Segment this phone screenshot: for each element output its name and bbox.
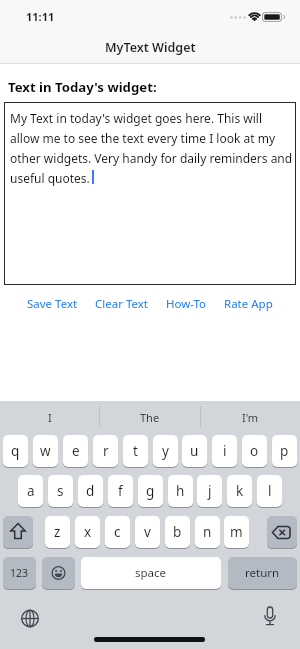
- staticText: k: [236, 482, 244, 500]
- staticText: c: [114, 523, 121, 541]
- staticText: Save Text: [27, 296, 78, 312]
- button[interactable]: a: [18, 475, 43, 507]
- staticText: a: [27, 482, 35, 500]
- button[interactable]: y: [153, 435, 178, 467]
- button[interactable]: b: [165, 516, 190, 548]
- button[interactable]: The: [110, 406, 190, 428]
- button[interactable]: j: [197, 475, 222, 507]
- staticText: q: [11, 442, 20, 460]
- button[interactable]: d: [78, 475, 103, 507]
- staticText: p: [280, 442, 289, 460]
- staticText: MyText Widget: [105, 39, 196, 56]
- button[interactable]: m: [224, 516, 249, 548]
- button[interactable]: n: [195, 516, 220, 548]
- button[interactable]: [256, 603, 284, 631]
- button[interactable]: Rate App: [224, 296, 273, 312]
- button[interactable]: c: [105, 516, 130, 548]
- button[interactable]: [267, 516, 297, 548]
- staticText: e: [72, 442, 80, 460]
- staticText: space: [135, 565, 167, 581]
- staticText: j: [208, 482, 212, 500]
- button[interactable]: q: [3, 435, 28, 467]
- staticText: The: [140, 410, 160, 425]
- staticText: return: [245, 565, 280, 581]
- button[interactable]: Clear Text: [95, 296, 148, 312]
- staticText: b: [173, 523, 182, 541]
- button[interactable]: space: [81, 557, 221, 589]
- button[interactable]: e: [63, 435, 88, 467]
- staticText: m: [230, 523, 243, 541]
- button[interactable]: w: [33, 435, 58, 467]
- staticText: n: [203, 523, 212, 541]
- button[interactable]: v: [135, 516, 160, 548]
- button[interactable]: r: [93, 435, 118, 467]
- button[interactable]: Save Text: [27, 296, 78, 312]
- button[interactable]: s: [48, 475, 73, 507]
- button[interactable]: h: [168, 475, 193, 507]
- button[interactable]: p: [272, 435, 297, 467]
- button[interactable]: f: [108, 475, 133, 507]
- button[interactable]: I: [10, 406, 90, 428]
- button[interactable]: [3, 516, 33, 548]
- button[interactable]: [42, 557, 75, 589]
- staticText: My Text in today's widget goes here. Thi…: [10, 110, 293, 186]
- button[interactable]: x: [75, 516, 100, 548]
- button[interactable]: t: [123, 435, 148, 467]
- staticText: w: [40, 442, 51, 460]
- staticText: u: [190, 442, 199, 460]
- staticText: 123: [10, 566, 29, 580]
- button[interactable]: l: [257, 475, 282, 507]
- button[interactable]: return: [228, 557, 297, 589]
- button[interactable]: I'm: [210, 406, 290, 428]
- staticText: d: [86, 482, 95, 500]
- staticText: o: [250, 442, 259, 460]
- staticText: v: [144, 523, 151, 541]
- staticText: Text in Today's widget:: [8, 78, 157, 96]
- staticText: I'm: [242, 410, 259, 425]
- staticText: 11:11: [26, 9, 55, 24]
- button[interactable]: i: [212, 435, 237, 467]
- staticText: Rate App: [224, 296, 273, 312]
- staticText: g: [146, 482, 155, 500]
- staticText: f: [118, 482, 123, 500]
- button[interactable]: g: [138, 475, 163, 507]
- staticText: h: [176, 482, 185, 500]
- staticText: y: [162, 442, 169, 460]
- staticText: i: [223, 442, 227, 460]
- button[interactable]: o: [242, 435, 267, 467]
- staticText: z: [54, 523, 61, 541]
- staticText: x: [84, 523, 92, 541]
- staticText: t: [133, 442, 138, 460]
- button[interactable]: How-To: [166, 296, 207, 312]
- button[interactable]: 123: [3, 557, 36, 589]
- button[interactable]: [16, 605, 44, 633]
- staticText: Clear Text: [95, 296, 148, 312]
- staticText: I: [48, 410, 52, 425]
- button[interactable]: k: [227, 475, 252, 507]
- staticText: r: [103, 442, 109, 460]
- button[interactable]: z: [45, 516, 70, 548]
- button[interactable]: u: [182, 435, 207, 467]
- staticText: How-To: [166, 296, 207, 312]
- staticText: s: [57, 482, 64, 500]
- staticText: l: [268, 482, 272, 500]
